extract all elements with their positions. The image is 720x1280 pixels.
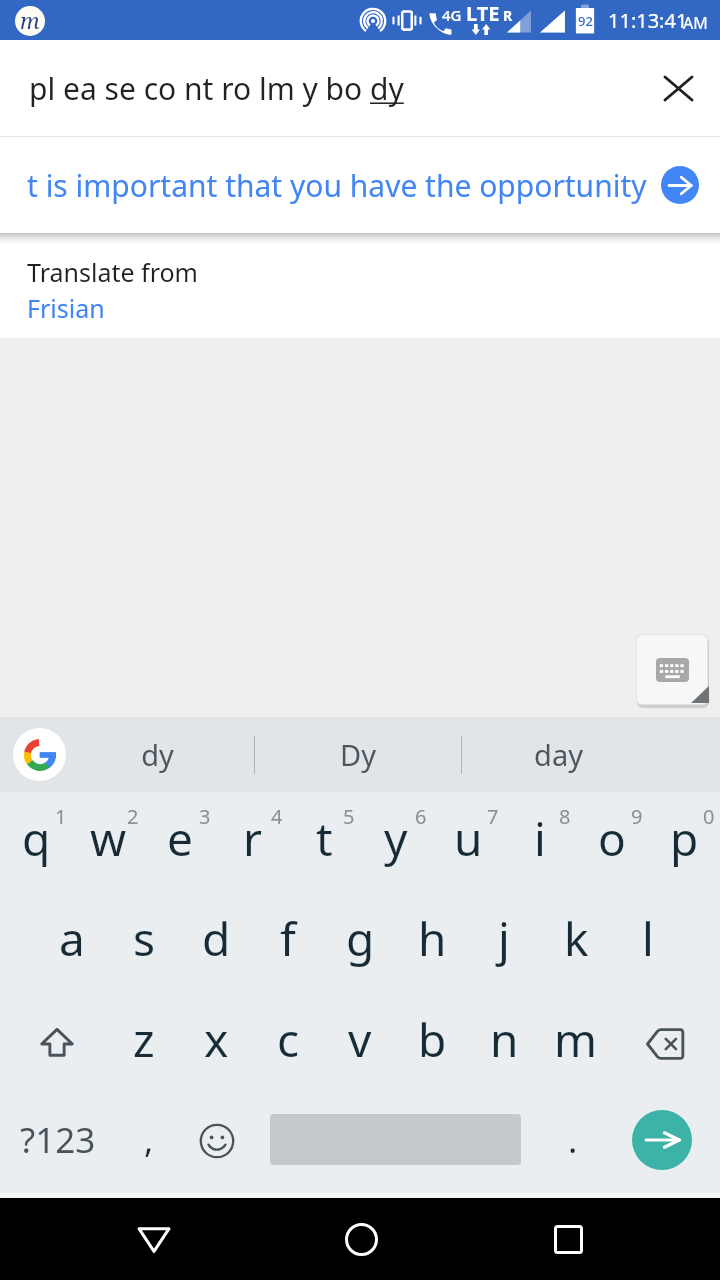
button[interactable]: y bbox=[360, 792, 432, 893]
staticText: 92 bbox=[578, 12, 593, 30]
button[interactable]: t bbox=[288, 792, 360, 893]
button[interactable]: m bbox=[540, 994, 612, 1095]
staticText: t is important that you have the opportu… bbox=[27, 165, 647, 206]
staticText: 9 bbox=[631, 803, 643, 830]
staticText: Translate from bbox=[27, 255, 198, 289]
staticText: LTE bbox=[466, 0, 500, 27]
staticText: k bbox=[564, 907, 589, 970]
button[interactable]: b bbox=[396, 994, 468, 1095]
staticText: t bbox=[316, 807, 333, 870]
staticText: 3 bbox=[199, 803, 211, 830]
button[interactable]: s bbox=[108, 893, 180, 994]
button[interactable]: Recent apps bbox=[527, 1198, 609, 1280]
staticText: r bbox=[243, 807, 262, 870]
button[interactable]: c bbox=[252, 994, 324, 1095]
staticText: s bbox=[133, 907, 156, 970]
staticText: day bbox=[534, 735, 583, 774]
staticText: g bbox=[346, 907, 375, 970]
staticText: b bbox=[418, 1008, 447, 1071]
button[interactable]: j bbox=[468, 893, 540, 994]
button[interactable]: Google bbox=[13, 728, 66, 781]
button[interactable]: Clear text bbox=[652, 62, 704, 114]
staticText: 4 bbox=[271, 803, 283, 830]
staticText: n bbox=[490, 1008, 519, 1071]
button[interactable]: z bbox=[108, 994, 180, 1095]
button[interactable]: Translate from bbox=[0, 244, 720, 341]
staticText: j bbox=[498, 907, 510, 970]
button[interactable]: Emoji bbox=[181, 1095, 253, 1197]
button[interactable]: w bbox=[72, 792, 144, 893]
staticText: dy bbox=[370, 68, 404, 109]
button[interactable]: o bbox=[576, 792, 648, 893]
button[interactable]: h bbox=[396, 893, 468, 994]
staticText: Dy bbox=[340, 735, 376, 774]
button[interactable]: n bbox=[468, 994, 540, 1095]
staticText: i bbox=[534, 807, 546, 870]
button[interactable]: e bbox=[144, 792, 216, 893]
staticText: 6 bbox=[415, 803, 427, 830]
button[interactable]: Back bbox=[113, 1198, 195, 1280]
staticText: 11:13:41 bbox=[608, 7, 688, 34]
button[interactable]: x bbox=[180, 994, 252, 1095]
button[interactable]: Home bbox=[320, 1198, 402, 1280]
staticText: x bbox=[204, 1008, 229, 1071]
button[interactable]: Enter bbox=[610, 1095, 720, 1197]
staticText: Frisian bbox=[27, 291, 105, 325]
button[interactable]: day bbox=[458, 717, 658, 792]
staticText: . bbox=[568, 1116, 578, 1164]
button[interactable]: r bbox=[216, 792, 288, 893]
staticText: 8 bbox=[559, 803, 571, 830]
staticText: v bbox=[348, 1008, 372, 1071]
staticText: p bbox=[670, 807, 699, 870]
staticText: 1 bbox=[55, 803, 67, 830]
button[interactable]: Shift bbox=[8, 994, 106, 1095]
staticText: R bbox=[503, 6, 513, 25]
button[interactable]: dy bbox=[57, 717, 257, 792]
button[interactable]: Space bbox=[253, 1095, 538, 1197]
staticText: 2 bbox=[127, 803, 139, 830]
button[interactable]: f bbox=[252, 893, 324, 994]
staticText: 7 bbox=[487, 803, 499, 830]
staticText: , bbox=[144, 1116, 154, 1164]
staticText: h bbox=[418, 907, 447, 970]
button[interactable]: ?123 bbox=[0, 1095, 114, 1197]
staticText: w bbox=[90, 807, 127, 870]
staticText: u bbox=[454, 807, 483, 870]
button[interactable]: . bbox=[538, 1095, 610, 1197]
staticText: 5 bbox=[343, 803, 355, 830]
staticText: m bbox=[554, 1008, 598, 1071]
button[interactable]: , bbox=[114, 1095, 186, 1197]
button[interactable]: Messenger bbox=[15, 6, 45, 36]
button[interactable]: q bbox=[0, 792, 72, 893]
staticText: c bbox=[277, 1008, 300, 1071]
button[interactable]: t is important that you have the opportu… bbox=[0, 137, 720, 233]
button[interactable]: p bbox=[648, 792, 720, 893]
button[interactable]: v bbox=[324, 994, 396, 1095]
button[interactable]: Backspace bbox=[616, 994, 714, 1095]
button[interactable]: u bbox=[432, 792, 504, 893]
staticText: ?123 bbox=[20, 1116, 96, 1164]
button[interactable]: a bbox=[36, 893, 108, 994]
button[interactable]: Show keyboard bbox=[637, 635, 707, 704]
staticText: y bbox=[384, 807, 408, 870]
staticText: dy bbox=[141, 735, 174, 774]
staticText: d bbox=[202, 907, 231, 970]
button[interactable]: i bbox=[504, 792, 576, 893]
staticText: pl ea se co nt ro lm y bo bbox=[29, 68, 370, 109]
staticText: 0 bbox=[703, 803, 715, 830]
button[interactable]: l bbox=[612, 893, 684, 994]
staticText: o bbox=[598, 807, 626, 870]
staticText: AM bbox=[683, 12, 708, 34]
button[interactable]: d bbox=[180, 893, 252, 994]
staticText: l bbox=[642, 907, 654, 970]
button[interactable]: Dy bbox=[258, 717, 458, 792]
button[interactable]: g bbox=[324, 893, 396, 994]
staticText: e bbox=[167, 807, 193, 870]
staticText: 4G bbox=[442, 5, 462, 25]
staticText: q bbox=[22, 807, 51, 870]
staticText: z bbox=[133, 1008, 155, 1071]
staticText: f bbox=[280, 907, 296, 970]
staticText: a bbox=[59, 907, 85, 970]
staticText: m bbox=[20, 6, 40, 35]
button[interactable]: k bbox=[540, 893, 612, 994]
